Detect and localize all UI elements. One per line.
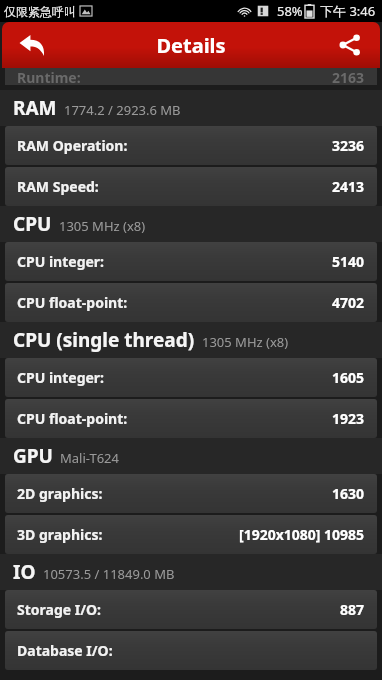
- button[interactable]: Back: [8, 22, 56, 68]
- staticText: 仅限紧急呼叫: [4, 4, 76, 19]
- staticText: 2413: [332, 177, 365, 196]
- staticText: [1920x1080] 10985: [239, 525, 365, 544]
- staticText: 2163: [332, 68, 365, 85]
- staticText: RAM Speed:: [17, 177, 99, 196]
- button[interactable]: CPU float-point:: [5, 399, 377, 438]
- staticText: 4702: [332, 293, 365, 312]
- staticText: 1774.2 / 2923.6 MB: [64, 101, 181, 119]
- staticText: 2D graphics:: [17, 484, 103, 503]
- staticText: CPU: [13, 211, 52, 237]
- staticText: 1305 MHz (x8): [59, 217, 146, 235]
- button[interactable]: CPU integer:: [5, 242, 377, 281]
- staticText: RAM: [13, 95, 57, 121]
- staticText: Storage I/O:: [17, 600, 102, 619]
- staticText: 5140: [332, 252, 365, 271]
- staticText: 887: [340, 600, 365, 619]
- staticText: Database I/O:: [17, 641, 113, 660]
- button[interactable]: 3D graphics:: [5, 515, 377, 554]
- staticText: 1605: [332, 368, 365, 387]
- staticText: Runtime:: [17, 68, 81, 85]
- staticText: CPU integer:: [17, 252, 105, 271]
- button[interactable]: 2D graphics:: [5, 474, 377, 513]
- staticText: 1923: [332, 409, 365, 428]
- staticText: 下午 3:46: [320, 2, 376, 20]
- staticText: GPU: [13, 443, 53, 469]
- button[interactable]: CPU integer:: [5, 358, 377, 397]
- staticText: CPU integer:: [17, 368, 105, 387]
- staticText: IO: [13, 559, 36, 585]
- button[interactable]: Share: [326, 22, 374, 68]
- staticText: 3236: [332, 136, 365, 155]
- staticText: 3D graphics:: [17, 525, 103, 544]
- staticText: 58%: [277, 2, 303, 20]
- button[interactable]: RAM Speed:: [5, 167, 377, 206]
- button[interactable]: CPU float-point:: [5, 283, 377, 322]
- staticText: CPU float-point:: [17, 293, 128, 312]
- staticText: RAM Operation:: [17, 136, 128, 155]
- staticText: CPU (single thread): [13, 327, 195, 353]
- button[interactable]: RAM Operation:: [5, 126, 377, 165]
- button[interactable]: Database I/O:: [5, 631, 377, 670]
- staticText: Details: [156, 32, 226, 59]
- staticText: 1305 MHz (x8): [202, 333, 289, 351]
- staticText: CPU float-point:: [17, 409, 128, 428]
- staticText: 10573.5 / 11849.0 MB: [43, 565, 175, 583]
- button[interactable]: Storage I/O:: [5, 590, 377, 629]
- staticText: 1630: [332, 484, 365, 503]
- staticText: Mali-T624: [60, 449, 119, 467]
